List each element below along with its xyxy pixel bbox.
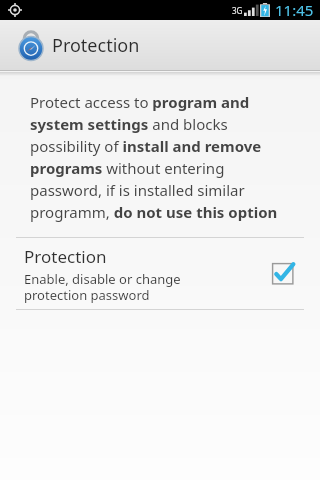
staticText: 3G xyxy=(232,5,243,16)
staticText: Protect access to program and system set… xyxy=(30,92,296,223)
staticText: Protection xyxy=(52,33,140,58)
staticText: Enable, disable or change protection pas… xyxy=(24,270,181,303)
staticText: Protection xyxy=(24,245,107,268)
staticText: 11:45 xyxy=(275,0,314,20)
button[interactable]: Protection xyxy=(0,238,320,309)
button[interactable]: Protection enabled xyxy=(266,257,300,291)
